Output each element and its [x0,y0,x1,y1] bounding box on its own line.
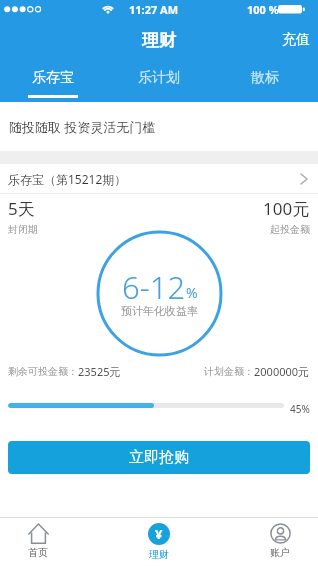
staticText: 理财 [142,30,176,51]
staticText: 乐存宝 [32,69,74,87]
staticText: 预计年化收益率 [121,304,198,318]
button[interactable]: 充值 [274,25,318,55]
staticText: 充值 [282,31,310,49]
staticText: 11:27 AM [129,2,179,17]
button[interactable]: 账户 [258,517,302,566]
staticText: 立即抢购 [129,448,189,467]
button[interactable]: ¥ [137,517,181,566]
staticText: % [186,283,198,302]
staticText: 45% [290,402,310,416]
staticText: 乐存宝（第15212期） [8,171,127,187]
staticText: 账户 [270,546,290,559]
staticText: 计划金额： [204,365,254,378]
staticText: 理财 [149,548,169,561]
button[interactable]: 乐计划 [106,60,212,102]
staticText: 随投随取 投资灵活无门槛 [9,118,156,136]
button[interactable]: 立即抢购 [8,441,310,474]
button[interactable]: 首页 [16,517,60,566]
staticText: ¥ [155,525,163,543]
staticText: 剩余可投金额： [8,365,78,378]
staticText: 乐计划 [138,69,180,87]
staticText: 6-12 [122,266,186,308]
staticText: 首页 [28,546,48,559]
staticText: 23525元 [78,364,121,379]
staticText: 2000000元 [254,364,310,379]
staticText: 100 % [247,2,279,17]
staticText: 5天 [8,197,35,220]
staticText: 散标 [251,69,279,87]
button[interactable]: 乐存宝（第15212期） [0,164,318,193]
button[interactable]: 乐存宝 [0,60,106,102]
staticText: 封闭期 [8,223,38,236]
staticText: 起投金额 [270,223,310,236]
button[interactable]: 散标 [212,60,318,102]
staticText: 100元 [263,197,310,220]
